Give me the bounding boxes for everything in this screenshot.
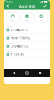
button[interactable]: Record: [24, 70, 30, 76]
button[interactable]: Save: [42, 3, 49, 9]
button[interactable]: Previous: [11, 70, 17, 76]
staticText: AMOUNT: [7, 50, 13, 52]
staticText: 27 May 2017: [11, 28, 29, 32]
button[interactable]: Next: [37, 70, 43, 76]
button[interactable]: CATEGORY: [4, 34, 50, 42]
button[interactable]: PROVIDER: [4, 42, 50, 50]
staticText: City Water Co.: [11, 45, 30, 48]
staticText: Add Bill: [19, 4, 35, 9]
staticText: 9:41: [6, 0, 13, 3]
button[interactable]: AMOUNT: [4, 50, 50, 58]
staticText: Power: [24, 19, 29, 21]
button[interactable]: Gas: [35, 13, 47, 22]
staticText: CATEGORY: [7, 34, 15, 36]
staticText: $ 128.40: [11, 53, 25, 56]
staticText: DUE DATE: [7, 26, 14, 28]
button[interactable]: DUE DATE: [4, 25, 50, 34]
staticText: Gas: [40, 19, 43, 21]
staticText: SELECT TYPE: [7, 10, 17, 12]
staticText: PROVIDER: [7, 42, 14, 44]
staticText: Home / Utility: [11, 36, 30, 40]
button[interactable]: Back: [5, 3, 12, 9]
button[interactable]: Power: [21, 13, 33, 22]
button[interactable]: Water: [7, 13, 19, 22]
staticText: Water: [11, 19, 15, 21]
